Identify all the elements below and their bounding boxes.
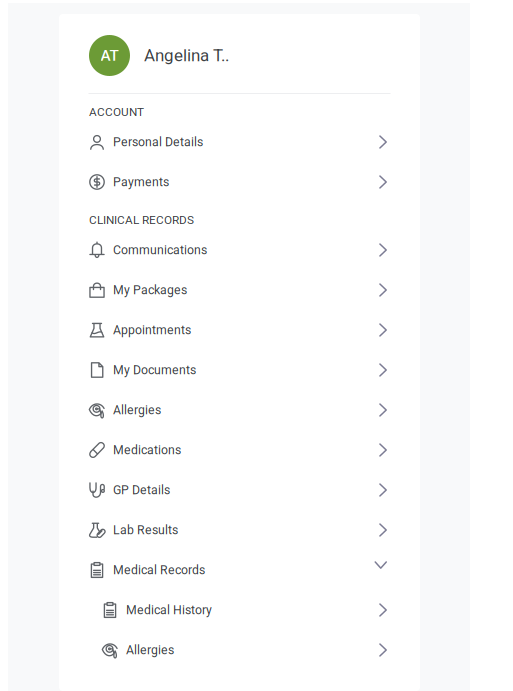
- button[interactable]: GP Details: [59, 470, 420, 510]
- staticText: Angelina T..: [144, 46, 229, 65]
- button[interactable]: AT: [59, 14, 420, 93]
- button[interactable]: Communications: [59, 230, 420, 270]
- staticText: Payments: [113, 175, 169, 189]
- staticText: Appointments: [113, 323, 191, 337]
- button[interactable]: Medications: [59, 430, 420, 470]
- staticText: My Documents: [113, 363, 196, 377]
- staticText: Allergies: [126, 643, 174, 657]
- button[interactable]: Medical History: [59, 590, 420, 630]
- staticText: Communications: [113, 243, 207, 257]
- button[interactable]: Medical Records: [59, 550, 420, 590]
- staticText: Personal Details: [113, 135, 203, 149]
- staticText: AT: [100, 46, 118, 64]
- staticText: ACCOUNT: [89, 105, 144, 119]
- staticText: GP Details: [113, 483, 170, 497]
- staticText: CLINICAL RECORDS: [89, 213, 194, 227]
- button[interactable]: My Packages: [59, 270, 420, 310]
- button[interactable]: My Documents: [59, 350, 420, 390]
- staticText: My Packages: [113, 283, 187, 297]
- staticText: Medications: [113, 443, 181, 457]
- button[interactable]: Allergies: [59, 390, 420, 430]
- button[interactable]: Personal Details: [59, 122, 420, 162]
- staticText: Medical History: [126, 603, 212, 617]
- staticText: Lab Results: [113, 523, 178, 537]
- button[interactable]: Lab Results: [59, 510, 420, 550]
- button[interactable]: Appointments: [59, 310, 420, 350]
- staticText: Medical Records: [113, 563, 205, 577]
- staticText: Allergies: [113, 403, 161, 417]
- button[interactable]: Allergies: [59, 630, 420, 670]
- button[interactable]: Payments: [59, 162, 420, 202]
